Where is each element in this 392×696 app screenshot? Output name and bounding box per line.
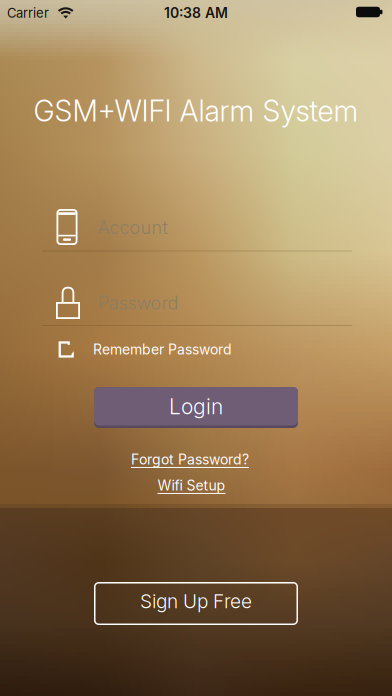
button[interactable]: Password (42, 277, 352, 329)
staticText: 10:38 AM (164, 4, 228, 21)
button[interactable]: Login (94, 387, 298, 428)
button[interactable]: Forgot Password? (131, 451, 249, 468)
staticText: GSM+WIFI Alarm System (33, 94, 358, 128)
staticText: Account (97, 217, 167, 238)
staticText: Forgot Password? (131, 451, 249, 468)
staticText: Password (97, 292, 178, 314)
staticText: Login (169, 394, 223, 419)
staticText: Carrier (7, 5, 49, 21)
button[interactable]: Account (42, 203, 352, 255)
staticText: Remember Password (93, 341, 232, 358)
staticText: Sign Up Free (140, 590, 252, 613)
button[interactable]: Wifi Setup (157, 477, 225, 494)
staticText: Wifi Setup (157, 477, 225, 494)
button[interactable]: Sign Up Free (94, 582, 298, 625)
button[interactable]: Remember Password (56, 338, 260, 364)
